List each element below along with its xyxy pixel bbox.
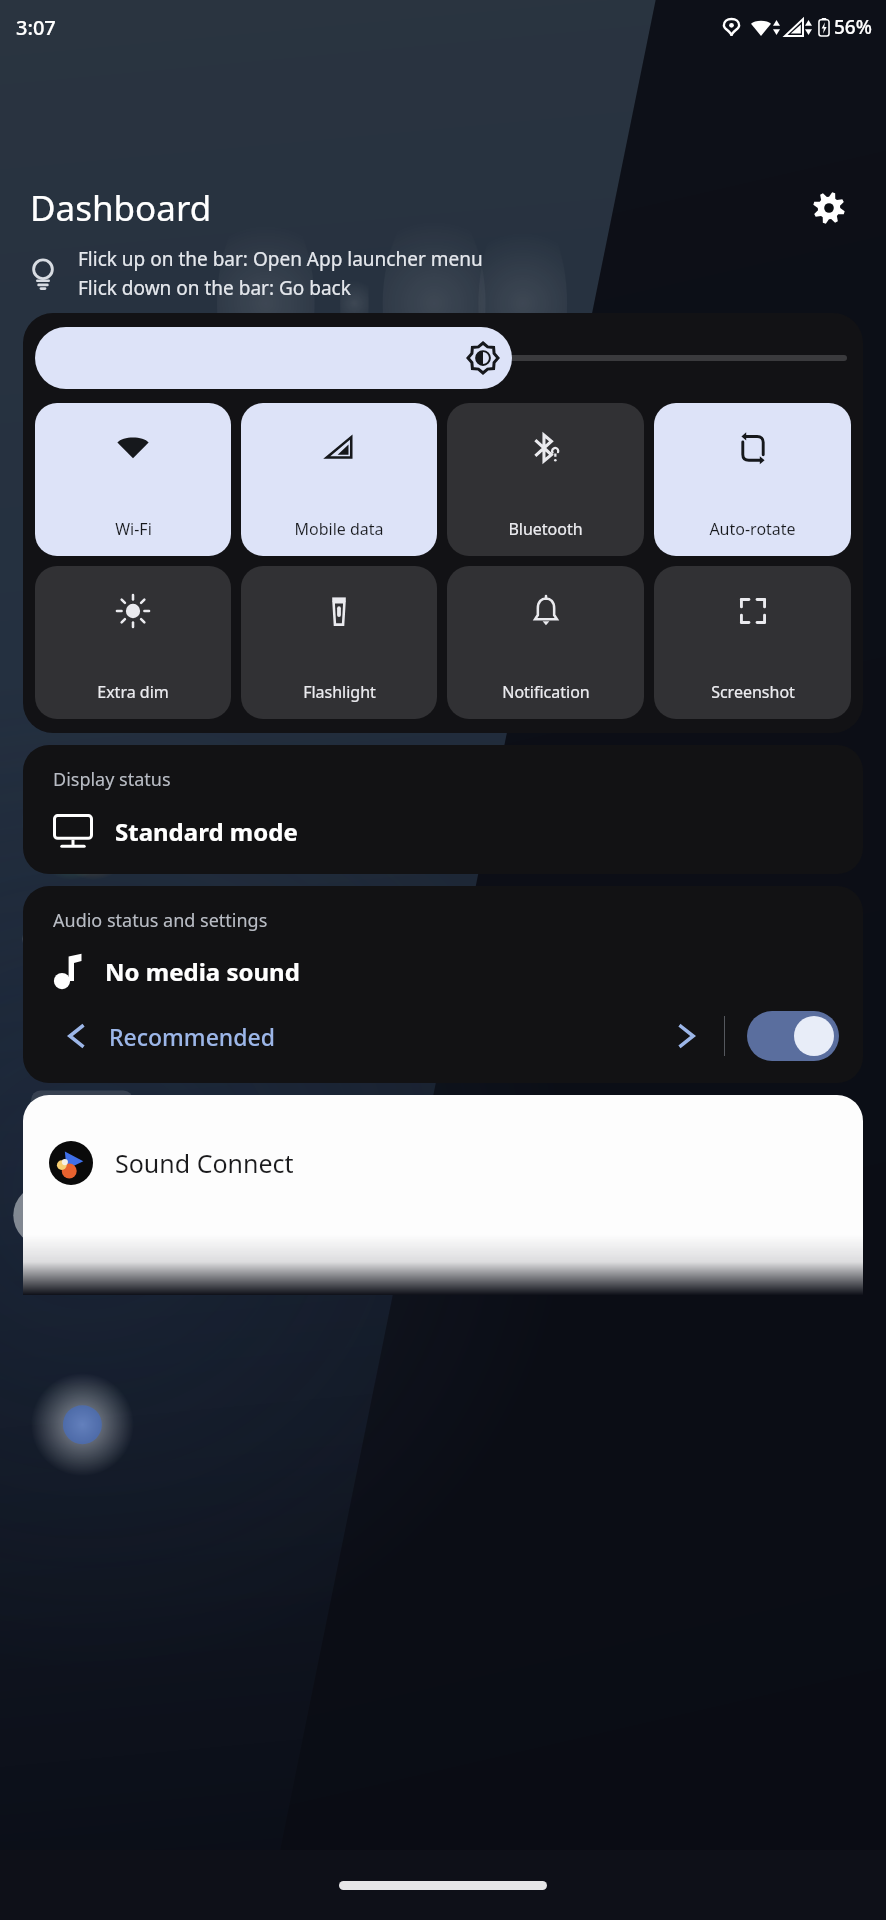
staticText: Audio status and settings xyxy=(53,908,268,933)
button[interactable]: Flashlight xyxy=(241,566,437,719)
staticText: Screenshot xyxy=(711,681,795,703)
staticText: 56% xyxy=(834,14,872,40)
staticText: Dashboard xyxy=(30,184,212,232)
staticText: Wi-Fi xyxy=(115,518,152,540)
staticText: Flick up on the bar: Open App launcher m… xyxy=(78,246,483,272)
staticText: Bluetooth xyxy=(508,518,583,540)
button[interactable]: Screenshot xyxy=(654,566,851,719)
staticText: Extra dim xyxy=(97,681,169,703)
staticText: Standard mode xyxy=(115,815,298,848)
button[interactable]: Mobile data xyxy=(241,403,437,556)
button[interactable]: Previous xyxy=(53,1013,99,1059)
staticText: Display status xyxy=(53,767,171,792)
button[interactable]: Toggle audio xyxy=(747,1011,839,1061)
button[interactable]: Next xyxy=(664,1013,710,1059)
staticText: Mobile data xyxy=(294,518,384,540)
staticText: Notification xyxy=(502,681,590,703)
staticText: No media sound xyxy=(105,955,300,988)
button[interactable]: Bluetooth xyxy=(447,403,644,556)
staticText: 3:07 xyxy=(16,14,56,41)
button[interactable]: Settings xyxy=(806,185,852,231)
staticText: Flashlight xyxy=(303,681,376,703)
button[interactable]: Brightness xyxy=(35,327,851,389)
button[interactable]: Wi-Fi xyxy=(35,403,231,556)
button[interactable]: Extra dim xyxy=(35,566,231,719)
staticText: Sound Connect xyxy=(115,1146,294,1180)
button[interactable]: Notification xyxy=(447,566,644,719)
button[interactable]: Display status xyxy=(23,745,863,874)
staticText: Flick down on the bar: Go back xyxy=(78,275,351,301)
staticText: Auto-rotate xyxy=(709,518,796,540)
button[interactable]: Recommended xyxy=(109,1021,275,1052)
button[interactable]: Sound Connect xyxy=(23,1095,863,1295)
button[interactable]: Auto-rotate xyxy=(654,403,851,556)
